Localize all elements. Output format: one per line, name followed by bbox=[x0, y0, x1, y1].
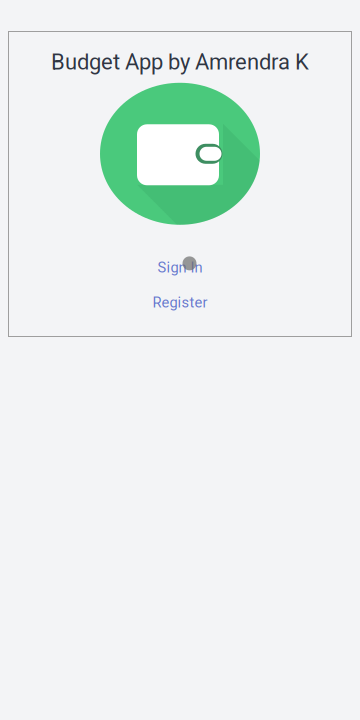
staticText: Sign In bbox=[157, 259, 202, 276]
staticText: Register bbox=[152, 294, 207, 311]
staticText: Budget App by Amrendra K bbox=[51, 49, 309, 75]
button[interactable]: Sign In bbox=[157, 259, 202, 276]
button[interactable]: Register bbox=[152, 294, 207, 311]
